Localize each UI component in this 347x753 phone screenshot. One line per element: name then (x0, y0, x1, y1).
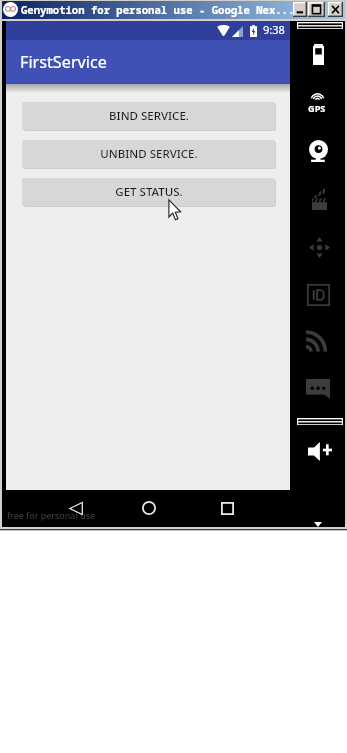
button[interactable]: Back (63, 495, 89, 521)
button[interactable]: Record video (312, 188, 327, 210)
button[interactable]: Device ID (307, 284, 330, 306)
staticText: FirstService (20, 51, 107, 73)
button[interactable]: Home (136, 495, 162, 521)
button[interactable]: Rotate (309, 237, 330, 258)
button[interactable]: Webcam (309, 140, 328, 162)
button[interactable]: Recents (214, 495, 240, 521)
button[interactable]: UNBIND SERVICE. (22, 140, 275, 168)
button[interactable]: More options (309, 515, 327, 533)
staticText: GET STATUS. (115, 184, 183, 200)
button[interactable]: Minimize (293, 2, 307, 17)
staticText: UNBIND SERVICE. (100, 146, 198, 162)
button[interactable]: GPS (311, 94, 324, 101)
staticText: 9:38 (263, 22, 285, 37)
staticText: GPS (308, 102, 326, 115)
button[interactable]: Battery (313, 44, 324, 65)
button[interactable]: Volume up (308, 442, 332, 461)
button[interactable]: Close (328, 2, 343, 17)
button[interactable]: BIND SERVICE. (22, 102, 275, 130)
button[interactable]: GET STATUS. (22, 178, 275, 206)
button[interactable]: SMS (306, 379, 330, 399)
staticText: free for personal use (7, 509, 96, 521)
button[interactable]: Maximize (308, 2, 325, 17)
button[interactable]: Network (304, 331, 328, 353)
staticText: BIND SERVICE. (109, 108, 189, 124)
staticText: Genymotion for personal use - Google Nex… (21, 3, 295, 17)
